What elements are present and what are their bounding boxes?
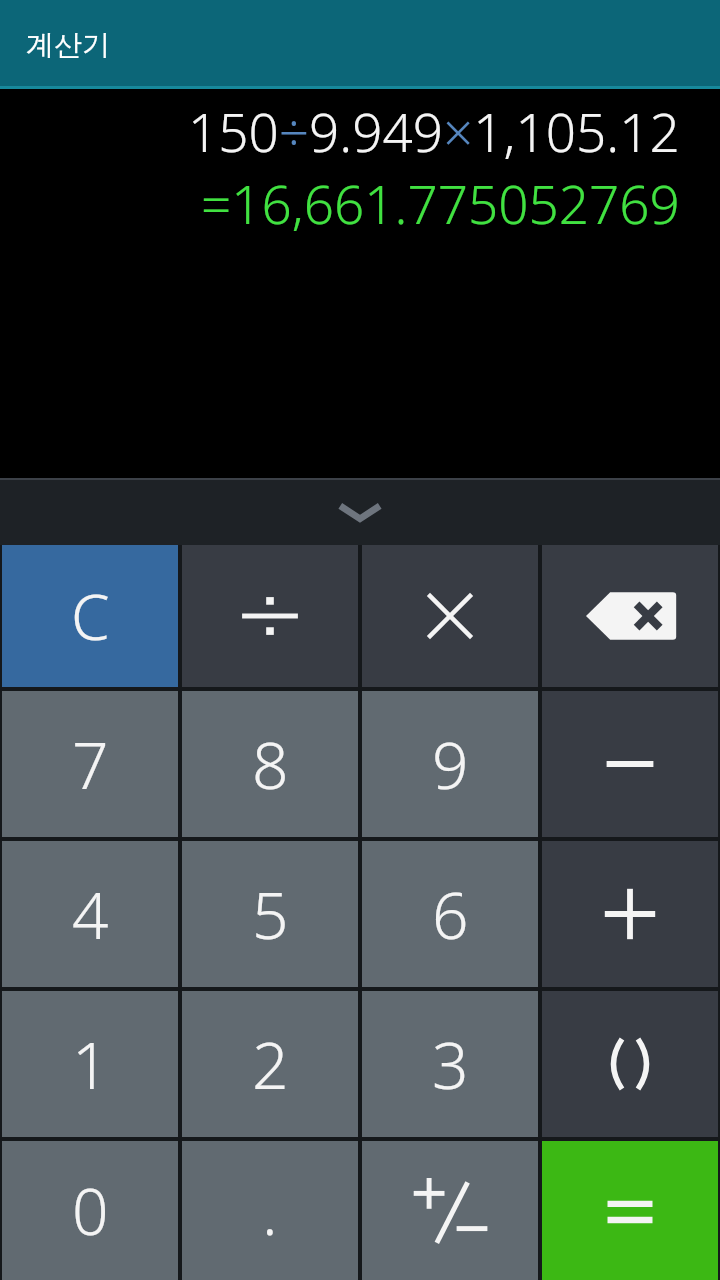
button[interactable]: Backspace	[542, 545, 718, 687]
staticText: =16,661.775052769	[201, 167, 680, 239]
button[interactable]: 6	[362, 841, 538, 987]
button[interactable]: Divide	[182, 545, 358, 687]
button[interactable]: 1	[2, 991, 178, 1137]
button[interactable]: Plus	[542, 841, 718, 987]
button[interactable]: Decimal point	[182, 1141, 358, 1280]
staticText: 3	[432, 1021, 469, 1108]
button[interactable]: Multiply	[362, 545, 538, 687]
staticText: 0	[72, 1167, 109, 1254]
button[interactable]: Clear	[2, 545, 178, 687]
staticText: 4	[72, 871, 109, 958]
staticText: 9	[432, 721, 469, 808]
button[interactable]: Minus	[542, 691, 718, 837]
button[interactable]: 2	[182, 991, 358, 1137]
button[interactable]: Plus minus sign	[362, 1141, 538, 1280]
button[interactable]: 3	[362, 991, 538, 1137]
staticText: 7	[72, 721, 109, 808]
button[interactable]: Parentheses	[542, 991, 718, 1137]
button[interactable]: 7	[2, 691, 178, 837]
button[interactable]: Equals	[542, 1141, 718, 1280]
button[interactable]: Collapse calculation history	[0, 478, 720, 545]
staticText: 5	[252, 871, 289, 958]
staticText: 1	[72, 1021, 109, 1108]
staticText: 6	[432, 871, 469, 958]
staticText: C	[71, 574, 110, 658]
staticText: .	[262, 1167, 278, 1254]
staticText: 8	[252, 721, 289, 808]
button[interactable]: 0	[2, 1141, 178, 1280]
button[interactable]: 9	[362, 691, 538, 837]
staticText: 2	[252, 1021, 289, 1108]
staticText: 150÷9.949×1,105.12	[188, 95, 680, 167]
staticText: 계산기	[26, 27, 110, 62]
button[interactable]: 5	[182, 841, 358, 987]
button[interactable]: 4	[2, 841, 178, 987]
button[interactable]: 8	[182, 691, 358, 837]
